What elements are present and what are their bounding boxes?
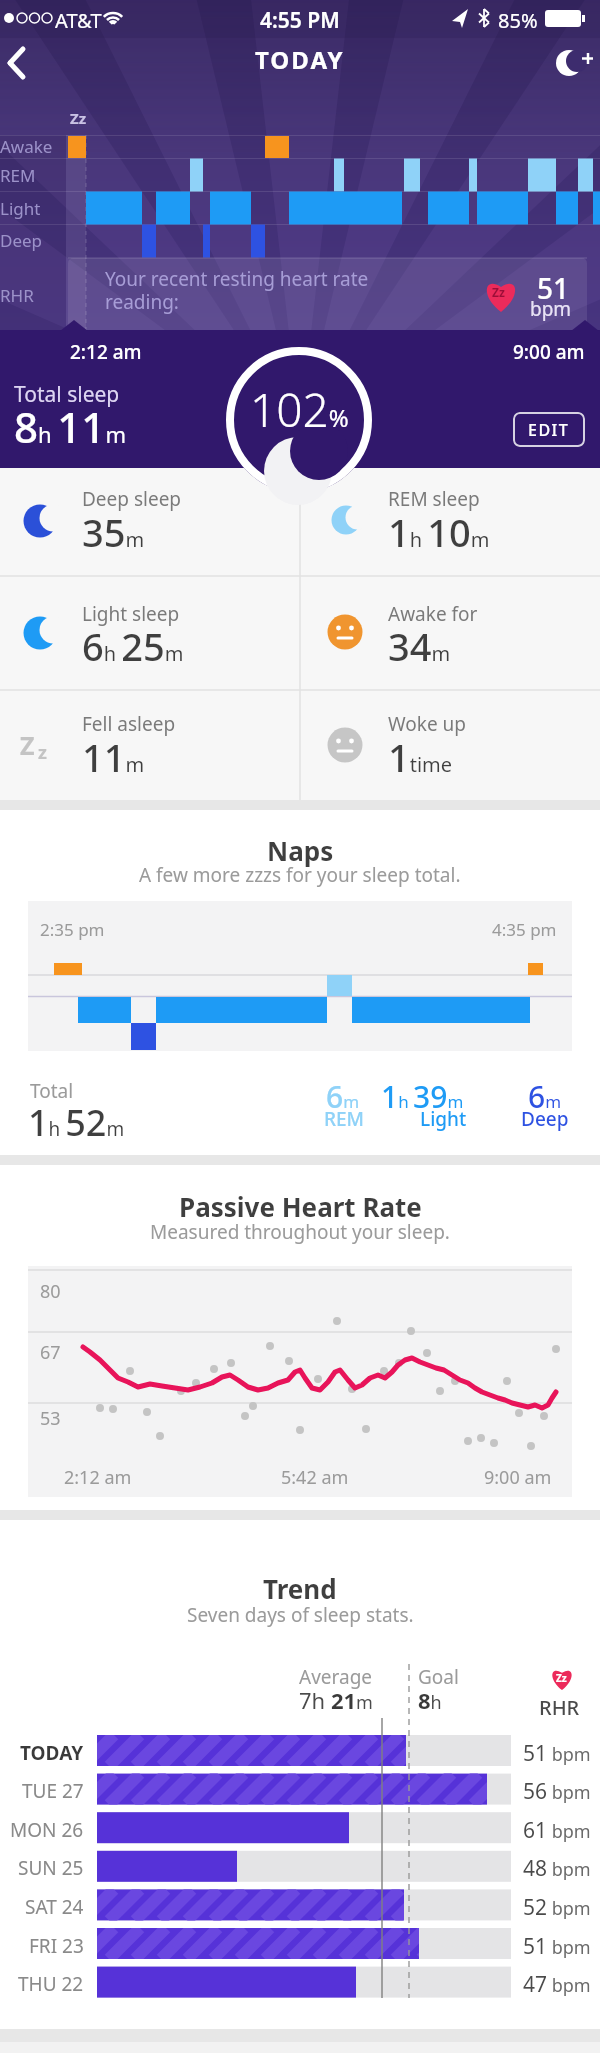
staticText: 6h 25m: [82, 620, 184, 672]
staticText: 6m: [528, 1076, 562, 1117]
staticText: Zz: [556, 1671, 567, 1685]
staticText: EDIT: [528, 419, 570, 441]
staticText: 56 bpm: [523, 1777, 591, 1806]
staticText: Fell asleep: [82, 711, 176, 737]
staticText: 8h 11m: [14, 398, 126, 455]
staticText: 47 bpm: [523, 1970, 591, 1999]
staticText: RHR: [539, 1694, 580, 1721]
staticText: Deep sleep: [82, 486, 182, 512]
staticText: Your recent resting heart rate: [105, 266, 369, 292]
staticText: A few more zzzs for your sleep total.: [139, 862, 461, 888]
staticText: Woke up: [388, 711, 467, 737]
staticText: Awake: [0, 135, 53, 158]
staticText: SUN 25: [18, 1855, 84, 1881]
button[interactable]: [0, 40, 56, 88]
staticText: 1h 39m: [381, 1076, 464, 1117]
staticText: Z: [20, 728, 35, 762]
staticText: 9:00 am: [513, 339, 585, 365]
staticText: SAT 24: [25, 1894, 84, 1920]
staticText: REM: [324, 1106, 365, 1132]
button[interactable]: [545, 40, 600, 88]
staticText: 11m: [82, 731, 145, 783]
staticText: z: [38, 740, 47, 765]
staticText: Measured throughout your sleep.: [150, 1219, 450, 1245]
staticText: 61 bpm: [523, 1816, 591, 1845]
staticText: REM: [0, 164, 36, 187]
staticText: 85%: [498, 7, 538, 34]
staticText: Deep: [521, 1106, 569, 1132]
staticText: Naps: [267, 833, 334, 868]
staticText: 51: [537, 269, 570, 307]
staticText: 67: [40, 1340, 61, 1365]
staticText: 51 bpm: [523, 1932, 591, 1961]
staticText: TODAY: [255, 43, 345, 76]
staticText: 4:35 pm: [492, 918, 557, 941]
staticText: 102%: [250, 378, 349, 438]
staticText: 34m: [388, 620, 451, 672]
staticText: AT&T: [55, 7, 102, 34]
staticText: 1h 10m: [388, 506, 490, 558]
staticText: Average: [299, 1664, 373, 1690]
staticText: Total sleep: [14, 380, 120, 409]
staticText: Awake for: [388, 601, 478, 627]
staticText: 52 bpm: [523, 1893, 591, 1922]
staticText: 35m: [82, 506, 145, 558]
staticText: THU 22: [18, 1971, 84, 1997]
staticText: Light sleep: [82, 601, 180, 627]
staticText: Trend: [263, 1571, 337, 1606]
staticText: 80: [40, 1279, 61, 1304]
staticText: MON 26: [10, 1817, 84, 1843]
staticText: 4:55 PM: [260, 6, 340, 35]
staticText: 2:12 am: [64, 1465, 132, 1490]
staticText: Passive Heart Rate: [179, 1189, 422, 1224]
staticText: 5:42 am: [281, 1465, 349, 1490]
staticText: Total: [30, 1078, 74, 1104]
staticText: 9:00 am: [484, 1465, 552, 1490]
staticText: Seven days of sleep stats.: [187, 1602, 414, 1628]
staticText: 8h: [418, 1685, 442, 1715]
staticText: REM sleep: [388, 486, 480, 512]
staticText: RHR: [0, 284, 34, 307]
staticText: Zz: [70, 108, 87, 128]
staticText: Light: [420, 1106, 467, 1132]
staticText: 7h 21m: [299, 1685, 373, 1715]
staticText: FRI 23: [29, 1933, 84, 1959]
staticText: reading:: [105, 289, 179, 315]
staticText: Zz: [492, 284, 505, 300]
staticText: 1time: [388, 731, 453, 783]
staticText: bpm: [530, 296, 572, 322]
staticText: 2:12 am: [70, 339, 142, 365]
staticText: TUE 27: [22, 1778, 84, 1804]
staticText: TODAY: [20, 1740, 84, 1766]
staticText: Goal: [418, 1664, 459, 1690]
staticText: 1h 52m: [28, 1098, 125, 1147]
staticText: 48 bpm: [523, 1854, 591, 1883]
staticText: 6m: [326, 1076, 360, 1117]
staticText: 2:35 pm: [40, 918, 105, 941]
staticText: 53: [40, 1406, 61, 1431]
staticText: Light: [0, 197, 41, 220]
staticText: 51 bpm: [523, 1739, 591, 1768]
button[interactable]: EDIT: [513, 412, 585, 447]
staticText: Deep: [0, 229, 43, 252]
